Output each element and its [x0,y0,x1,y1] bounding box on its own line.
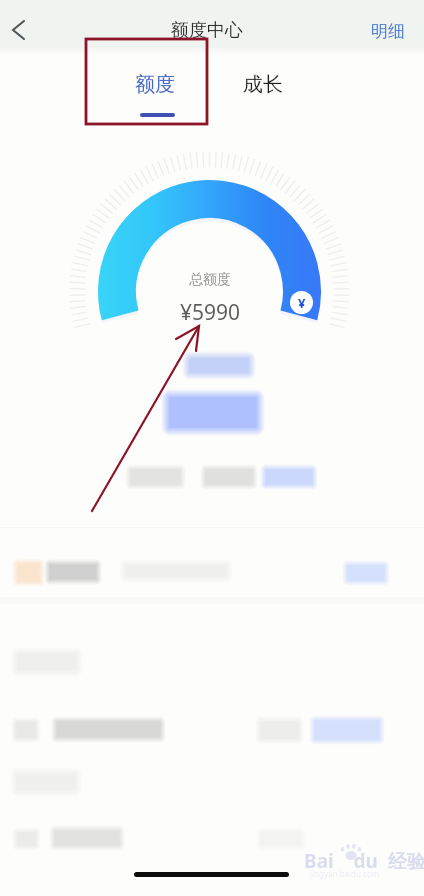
staticText: 明细 [371,21,405,42]
staticText: jingyan.baidu.com [310,868,380,879]
staticText: Bai du 经验 [304,848,424,874]
staticText: 成长 [243,72,283,97]
staticText: 额度 [135,72,175,97]
button[interactable]: 明细 [355,8,419,52]
button[interactable]: Back [0,6,36,54]
staticText: 总额度 [189,271,231,289]
staticText: ¥5990 [180,298,241,327]
staticText: 额度中心 [171,19,243,42]
button[interactable]: 成长 [215,60,311,108]
staticText: ¥ [298,294,306,312]
button[interactable]: 额度 [107,60,203,122]
